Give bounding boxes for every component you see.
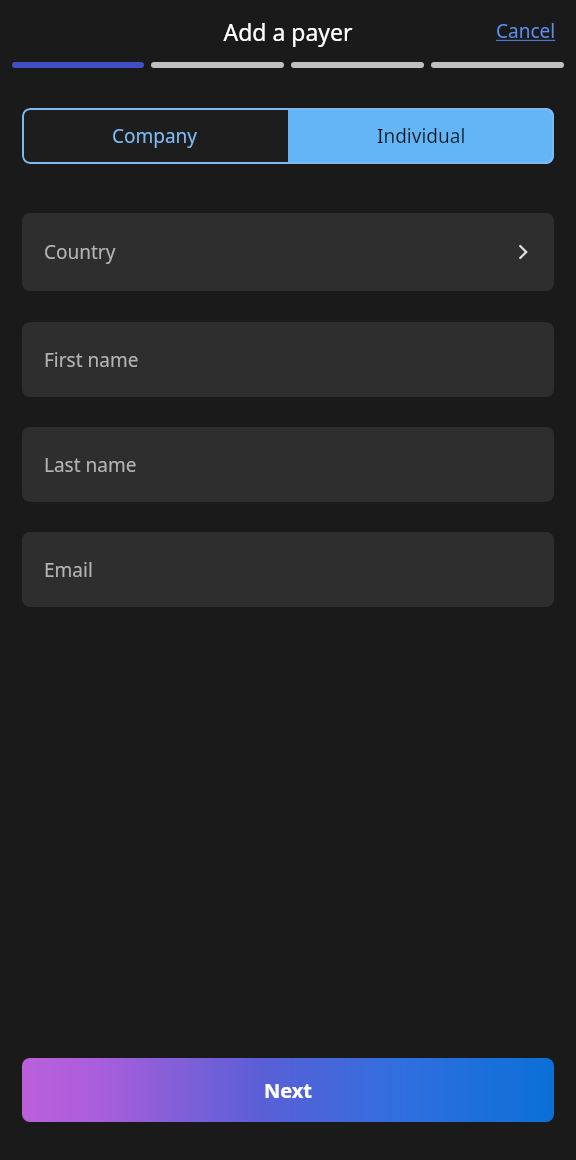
staticText: Last name	[44, 452, 137, 478]
button[interactable]: Company	[22, 108, 288, 164]
button[interactable]: Next	[22, 1058, 554, 1122]
staticText: Next	[264, 1077, 313, 1104]
button[interactable]: Individual	[288, 108, 554, 164]
button[interactable]: Email	[22, 532, 554, 607]
button[interactable]: Last name	[22, 427, 554, 502]
button[interactable]: Country	[22, 213, 554, 291]
staticText: Add a payer	[223, 16, 353, 47]
staticText: First name	[44, 347, 139, 373]
button[interactable]: First name	[22, 322, 554, 397]
staticText: Individual	[377, 123, 466, 149]
other: Select country	[513, 242, 533, 262]
button[interactable]: Cancel	[492, 10, 560, 52]
staticText: Cancel	[496, 18, 556, 44]
staticText: Country	[44, 239, 116, 265]
staticText: Email	[44, 557, 93, 583]
staticText: Company	[112, 123, 198, 149]
